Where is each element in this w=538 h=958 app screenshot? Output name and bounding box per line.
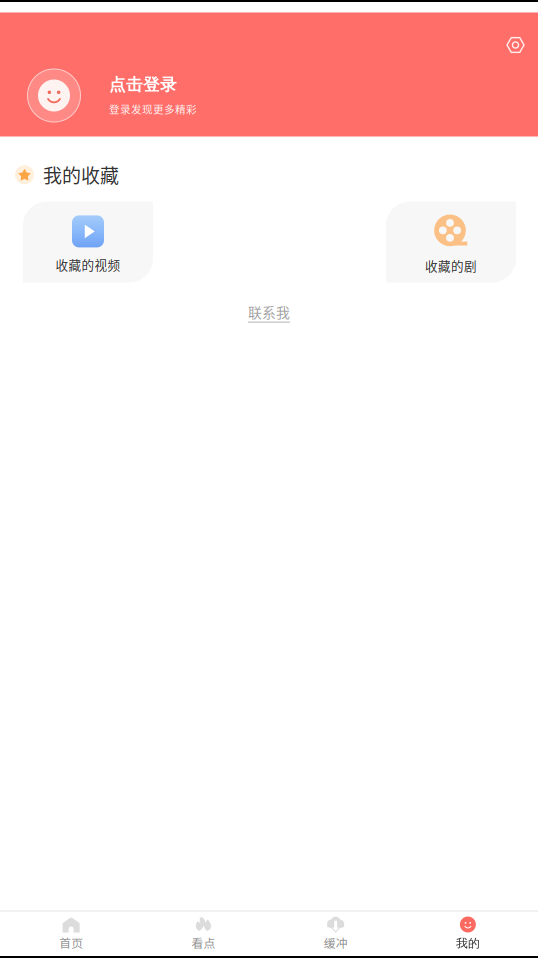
staticText: 缓冲: [324, 934, 348, 951]
staticText: 联系我: [248, 301, 290, 322]
staticText: 首页: [59, 934, 83, 951]
button[interactable]: 我的: [402, 912, 534, 956]
button[interactable]: 点击登录: [0, 12, 538, 157]
staticText: 看点: [191, 934, 215, 951]
button[interactable]: 联系我: [248, 282, 290, 323]
staticText: 点击登录: [109, 74, 177, 95]
button[interactable]: Settings: [507, 12, 538, 53]
button[interactable]: 看点: [137, 912, 269, 956]
staticText: 我的: [456, 936, 480, 951]
button[interactable]: 收藏的剧: [386, 201, 516, 282]
button[interactable]: 首页: [5, 912, 137, 956]
staticText: 我的收藏: [43, 161, 119, 188]
button[interactable]: 缓冲: [269, 912, 402, 956]
staticText: 登录发现更多精彩: [109, 101, 197, 116]
staticText: 收藏的剧: [425, 256, 477, 275]
staticText: 收藏的视频: [55, 255, 120, 274]
button[interactable]: 收藏的视频: [23, 201, 153, 282]
